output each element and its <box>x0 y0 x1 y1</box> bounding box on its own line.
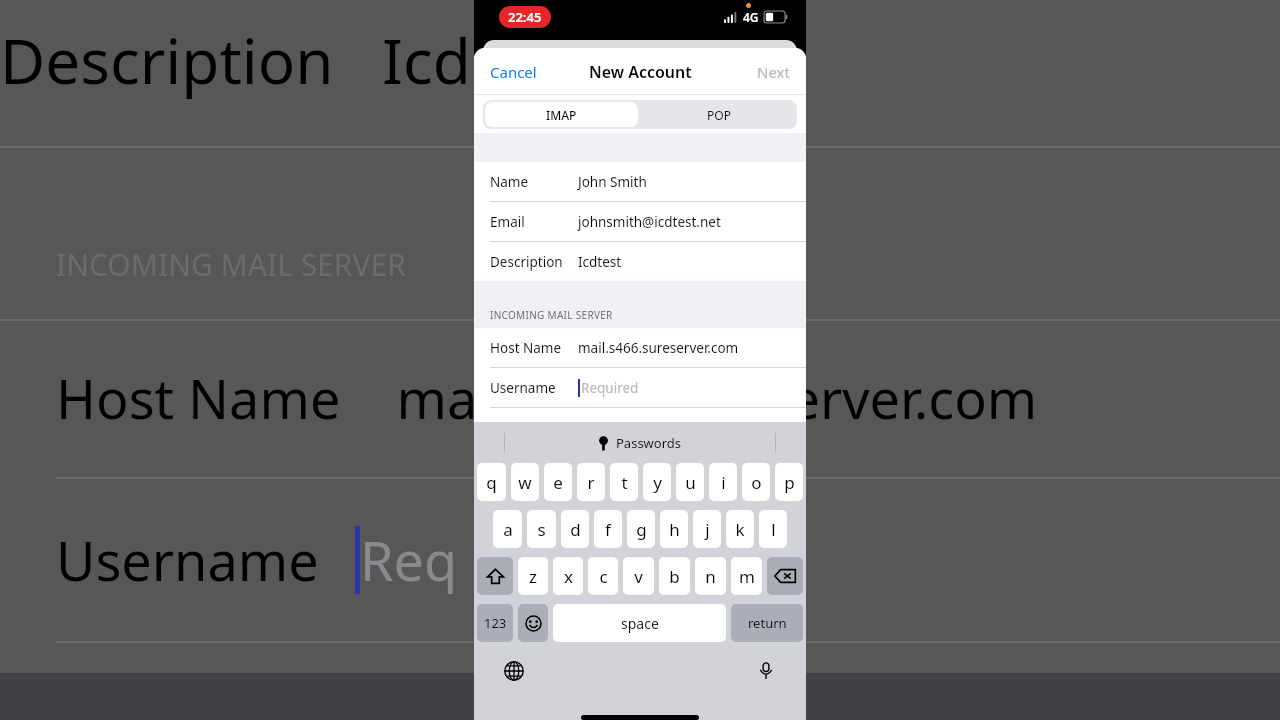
staticText: Passwords <box>616 434 682 452</box>
button[interactable]: y <box>643 463 671 501</box>
staticText: p <box>784 471 795 494</box>
button[interactable]: Backspace <box>767 557 803 595</box>
button[interactable]: Next <box>741 54 806 90</box>
button[interactable]: m <box>731 557 762 595</box>
button[interactable]: Passwords <box>598 434 682 452</box>
staticText: z <box>529 565 537 588</box>
staticText: Icdtest <box>578 253 622 271</box>
staticText: Host Name mail.s466.sureserver.com <box>56 361 1038 435</box>
staticText: Description <box>490 253 563 271</box>
button[interactable]: k <box>726 510 754 548</box>
button[interactable]: Username <box>474 368 806 407</box>
button[interactable]: z <box>518 557 548 595</box>
staticText: Req <box>360 523 458 597</box>
button[interactable]: Emoji <box>518 604 548 642</box>
staticText: 22:45 <box>508 8 542 26</box>
button[interactable]: f <box>594 510 622 548</box>
staticText: k <box>735 518 745 541</box>
staticText: Username <box>56 523 319 597</box>
button[interactable]: Email <box>474 202 806 241</box>
button[interactable]: q <box>477 463 506 501</box>
staticText: johnsmith@icdtest.net <box>578 213 721 231</box>
staticText: INCOMING MAIL SERVER <box>490 308 613 322</box>
staticText: r <box>587 471 595 494</box>
button[interactable]: IMAP <box>485 102 638 127</box>
staticText: h <box>669 518 680 541</box>
button[interactable]: x <box>553 557 583 595</box>
staticText: space <box>621 614 659 633</box>
button[interactable]: r <box>577 463 605 501</box>
staticText: Next <box>757 62 790 82</box>
staticText: u <box>685 471 696 494</box>
staticText: n <box>705 565 716 588</box>
button[interactable]: v <box>623 557 654 595</box>
staticText: d <box>570 518 581 541</box>
staticText: INCOMING MAIL SERVER <box>56 244 406 285</box>
button[interactable]: w <box>511 463 539 501</box>
button[interactable]: Shift <box>477 557 513 595</box>
button[interactable]: i <box>709 463 737 501</box>
staticText: w <box>518 471 532 494</box>
staticText: t <box>621 471 628 494</box>
staticText: 123 <box>484 614 507 632</box>
staticText: s <box>537 518 546 541</box>
staticText: b <box>669 565 680 588</box>
button[interactable]: s <box>527 510 556 548</box>
staticText: Required <box>581 379 639 397</box>
button[interactable]: Cancel <box>474 54 553 90</box>
staticText: i <box>721 471 726 494</box>
button[interactable]: 123 <box>477 604 513 642</box>
staticText: l <box>771 518 776 541</box>
staticText: Description Icd <box>0 18 471 102</box>
staticText: Host Name <box>490 339 562 357</box>
staticText: x <box>564 565 573 588</box>
staticText: f <box>605 518 611 541</box>
button[interactable]: l <box>759 510 787 548</box>
staticText: mail.s466.sureserver.com <box>578 339 739 357</box>
button[interactable]: c <box>588 557 618 595</box>
staticText: a <box>503 518 513 541</box>
button[interactable]: Host Name <box>474 328 806 367</box>
button[interactable]: Change keyboard <box>501 658 527 684</box>
staticText: c <box>599 565 608 588</box>
button[interactable]: space <box>553 604 726 642</box>
button[interactable]: b <box>659 557 690 595</box>
staticText: y <box>653 471 662 494</box>
staticText: POP <box>707 107 731 123</box>
staticText: return <box>748 614 787 632</box>
staticText: m <box>739 565 755 588</box>
button[interactable]: n <box>695 557 726 595</box>
button[interactable]: a <box>493 510 522 548</box>
button[interactable]: e <box>544 463 572 501</box>
button[interactable]: Name <box>474 162 806 201</box>
staticText: j <box>705 518 710 541</box>
button[interactable]: Description <box>474 242 806 281</box>
button[interactable]: u <box>676 463 704 501</box>
staticText: Name <box>490 173 529 191</box>
staticText: e <box>553 471 563 494</box>
staticText: IMAP <box>546 107 577 123</box>
button[interactable]: g <box>627 510 655 548</box>
button[interactable]: t <box>610 463 638 501</box>
staticText: v <box>634 565 643 588</box>
staticText: g <box>636 518 647 541</box>
button[interactable]: POP <box>640 100 797 129</box>
button[interactable]: p <box>775 463 803 501</box>
button[interactable]: d <box>561 510 589 548</box>
staticText: John Smith <box>578 173 647 191</box>
button[interactable]: j <box>693 510 721 548</box>
staticText: Username <box>490 379 556 397</box>
staticText: New Account <box>589 61 692 83</box>
staticText: Email <box>490 213 525 231</box>
button[interactable]: return <box>731 604 803 642</box>
staticText: 4G <box>743 9 759 25</box>
staticText: q <box>486 471 497 494</box>
button[interactable]: h <box>660 510 688 548</box>
staticText: Cancel <box>490 62 537 82</box>
button[interactable]: Dictation <box>753 658 779 684</box>
staticText: o <box>751 471 762 494</box>
button[interactable]: o <box>742 463 770 501</box>
